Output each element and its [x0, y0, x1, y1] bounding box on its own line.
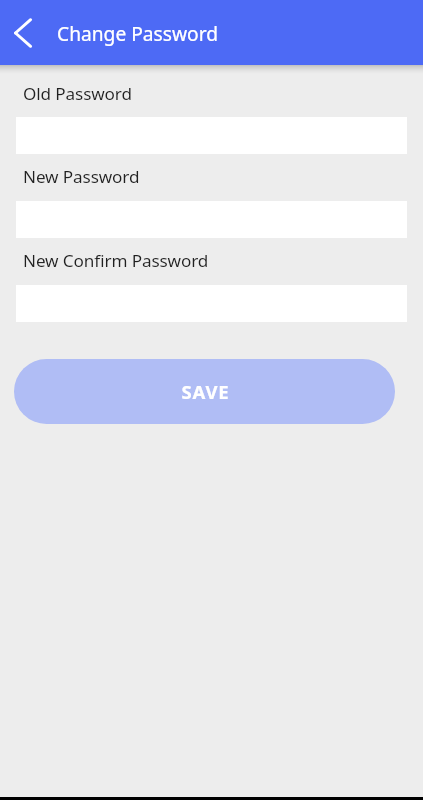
staticText: Change Password	[57, 20, 219, 46]
staticText: New Password	[23, 165, 140, 188]
staticText: SAVE	[181, 379, 230, 404]
staticText: New Confirm Password	[23, 249, 209, 272]
button[interactable]: Back	[0, 10, 39, 56]
staticText: Old Password	[23, 82, 132, 105]
button[interactable]: SAVE	[14, 359, 395, 424]
